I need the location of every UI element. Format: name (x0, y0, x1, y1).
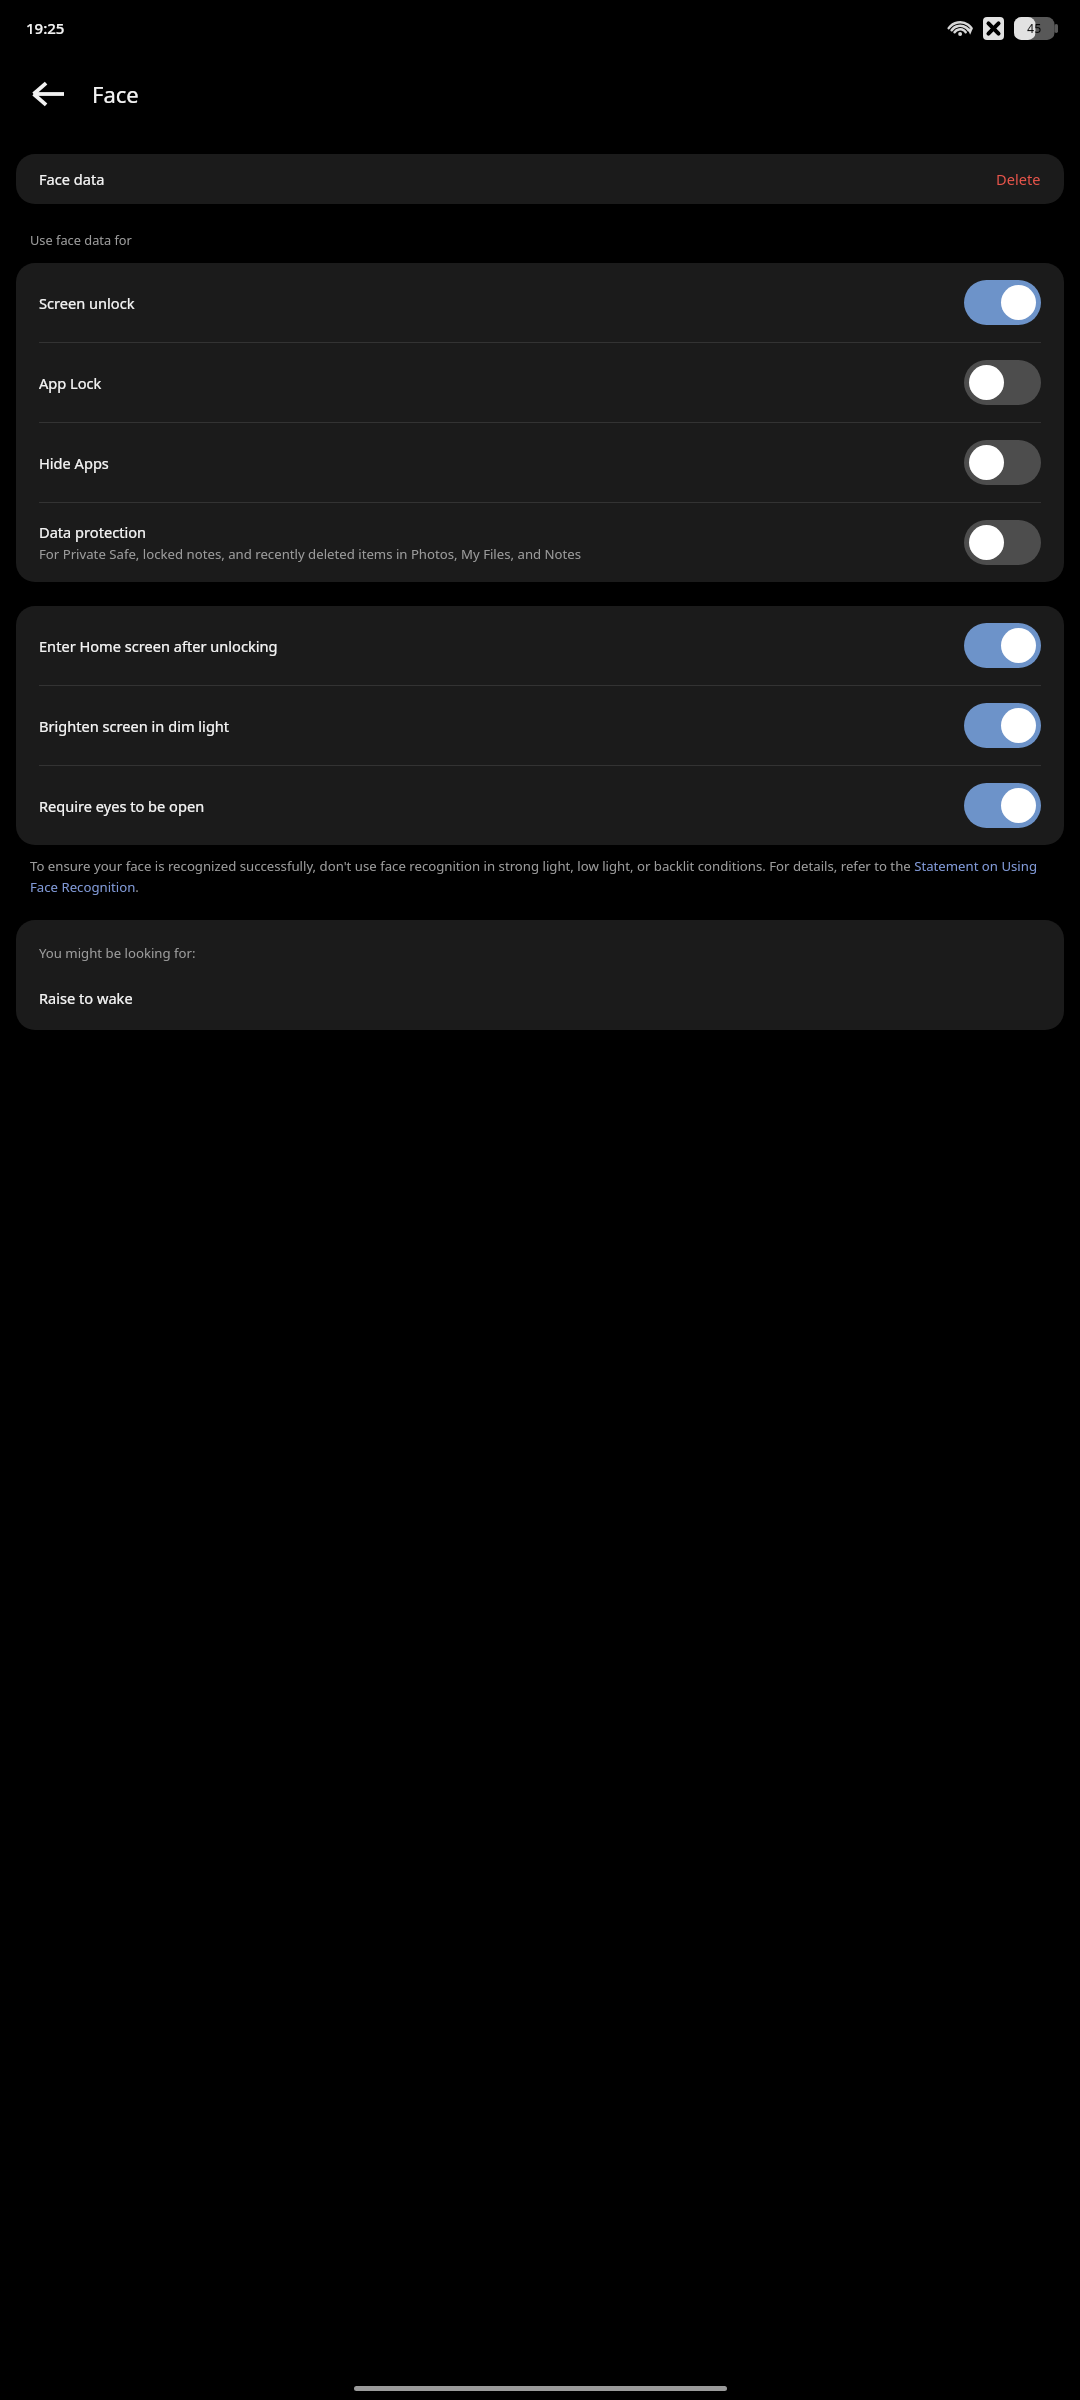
staticText: App Lock (39, 373, 102, 393)
staticText: Hide Apps (39, 453, 109, 473)
button[interactable]: Switch on (964, 280, 1041, 325)
button[interactable]: Switch off (964, 360, 1041, 405)
button[interactable]: Brighten screen in dim light (16, 686, 1064, 765)
button[interactable]: To ensure your face is recognized succes… (30, 857, 1050, 896)
staticText: Require eyes to be open (39, 796, 205, 816)
staticText: Brighten screen in dim light (39, 716, 230, 736)
staticText: Screen unlock (39, 293, 135, 313)
button[interactable]: Face data (16, 154, 1064, 204)
staticText: For Private Safe, locked notes, and rece… (39, 545, 582, 563)
button[interactable]: Switch on (964, 783, 1041, 828)
button[interactable]: Data protection (16, 503, 1064, 582)
button[interactable]: Switch off (964, 440, 1041, 485)
staticText: Enter Home screen after unlocking (39, 636, 278, 656)
button[interactable]: Require eyes to be open (16, 766, 1064, 845)
button[interactable]: Switch on (964, 623, 1041, 668)
button[interactable]: Switch on (964, 703, 1041, 748)
staticText: 19:25 (26, 18, 65, 38)
button[interactable]: Enter Home screen after unlocking (16, 606, 1064, 685)
button[interactable]: App Lock (16, 343, 1064, 422)
staticText: Raise to wake (39, 988, 133, 1008)
button[interactable]: Screen unlock (16, 263, 1064, 342)
staticText: Face data (39, 169, 996, 189)
staticText: Face (92, 79, 139, 109)
staticText: Data protection (39, 522, 147, 542)
button[interactable]: Raise to wake (16, 988, 1064, 1030)
staticText: 45 (1027, 20, 1042, 37)
staticText: Use face data for (30, 231, 132, 248)
button[interactable]: Back (20, 66, 76, 122)
staticText: You might be looking for: (39, 944, 196, 962)
button[interactable]: Hide Apps (16, 423, 1064, 502)
button[interactable]: Switch off (964, 520, 1041, 565)
staticText: Delete (996, 169, 1041, 189)
